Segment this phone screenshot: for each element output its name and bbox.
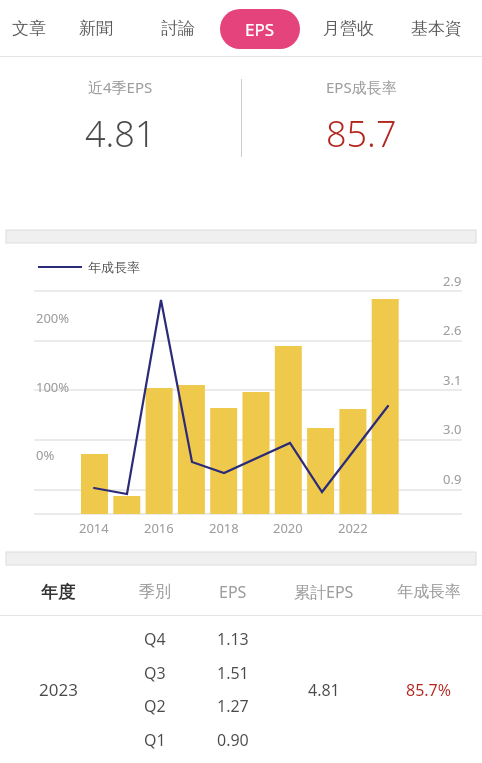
staticText: 0.90 [217,729,249,751]
staticText: Q4 [144,628,166,650]
staticText: 0% [36,446,55,464]
staticText: 3.1 [443,371,462,389]
staticText: 1.51 [217,662,249,684]
button[interactable]: 月營收 [300,0,396,57]
staticText: 1.13 [217,628,249,650]
staticText: Q2 [144,695,166,717]
staticText: 100% [36,378,70,396]
button[interactable]: 2023 [0,616,482,763]
staticText: Q3 [144,662,166,684]
staticText: 2.9 [443,272,462,290]
staticText: 年成長率 [88,259,140,275]
staticText: 0.9 [443,470,462,488]
staticText: 近4季EPS [88,77,153,97]
button[interactable]: 新聞 [56,0,136,57]
staticText: 新聞 [79,18,113,39]
staticText: 討論 [161,18,195,39]
button[interactable]: 文章 [2,0,56,57]
staticText: 1.27 [217,695,249,717]
button[interactable]: 基本資 [396,0,476,57]
staticText: 年度 [41,582,75,603]
button[interactable]: 討論 [136,0,220,57]
staticText: 2020 [273,519,303,537]
staticText: Q1 [144,729,166,751]
staticText: 4.81 [85,109,156,158]
staticText: 文章 [12,18,46,39]
staticText: EPS成長率 [326,77,397,97]
staticText: 2016 [144,519,174,537]
staticText: 2023 [39,678,78,701]
staticText: 月營收 [323,18,374,39]
staticText: EPS [219,581,247,603]
staticText: 4.81 [308,679,340,701]
staticText: 2.6 [443,321,462,339]
staticText: 3.0 [443,420,462,438]
staticText: 季別 [139,582,171,602]
staticText: 基本資 [411,18,462,39]
button[interactable]: EPS [220,0,300,57]
staticText: 年成長率 [397,582,461,602]
staticText: 85.7% [406,679,452,701]
staticText: 2014 [79,519,109,537]
staticText: 200% [36,309,70,327]
staticText: 累計EPS [294,581,354,603]
staticText: 85.7 [326,109,397,158]
staticText: EPS [245,18,275,41]
staticText: 2022 [338,519,368,537]
staticText: 2018 [209,519,239,537]
